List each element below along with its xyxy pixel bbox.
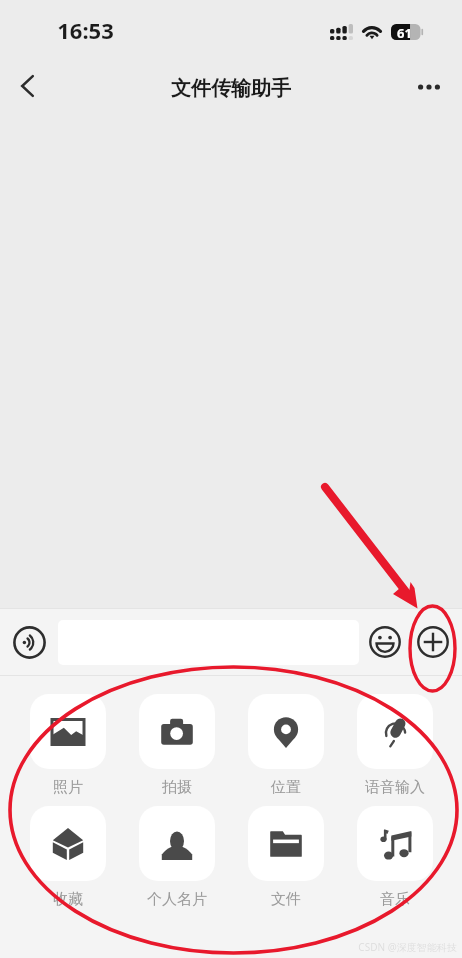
staticText: 照片 (53, 778, 83, 797)
button[interactable]: Emoji (369, 626, 401, 658)
staticText: 16:53 (57, 15, 114, 45)
staticText: 文件传输助手 (171, 76, 291, 101)
button[interactable]: More options (406, 63, 451, 115)
button[interactable]: 音乐 (347, 806, 443, 909)
button[interactable]: 文件 (238, 806, 334, 909)
staticText: 语音输入 (365, 778, 425, 797)
staticText: 拍摄 (162, 778, 192, 797)
staticText: 个人名片 (147, 890, 207, 909)
button[interactable]: 语音输入 (347, 694, 443, 797)
staticText: 61 (397, 24, 412, 40)
button[interactable]: 照片 (20, 694, 116, 797)
button[interactable]: Back (0, 63, 52, 115)
button[interactable]: 拍摄 (129, 694, 225, 797)
button[interactable]: Voice input (13, 626, 46, 659)
button[interactable]: 收藏 (20, 806, 116, 909)
staticText: 音乐 (380, 890, 410, 909)
staticText: CSDN @深度智能科技 (358, 940, 457, 954)
staticText: 文件 (271, 890, 301, 909)
button[interactable]: 个人名片 (129, 806, 225, 909)
button[interactable]: 位置 (238, 694, 334, 797)
button[interactable]: More attachments (417, 626, 449, 658)
staticText: 收藏 (53, 890, 83, 909)
staticText: 位置 (271, 778, 301, 797)
